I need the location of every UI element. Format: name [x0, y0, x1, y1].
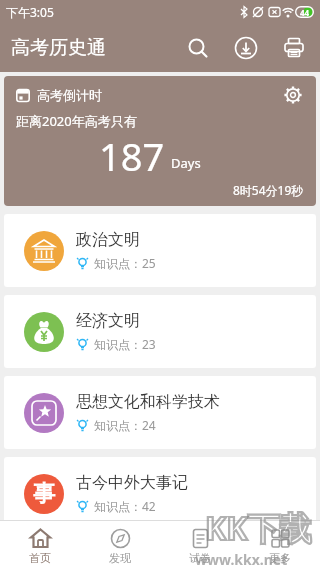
staticText: 事 [33, 480, 55, 508]
staticText: 发现 [109, 551, 131, 565]
button[interactable]: 政治文明 [4, 214, 316, 287]
button[interactable]: 首页 [0, 521, 80, 569]
staticText: 高考倒计时 [37, 87, 102, 103]
staticText: 8时54分19秒 [233, 182, 304, 198]
staticText: 知识点：42 [94, 498, 156, 514]
staticText: 距离2020年高考只有 [16, 112, 137, 130]
staticText: 政治文明 [76, 230, 140, 250]
staticText: 知识点：24 [94, 417, 156, 433]
staticText: 187 [99, 130, 165, 182]
staticText: 思想文化和科学技术 [76, 392, 220, 412]
button[interactable] [222, 24, 270, 72]
button[interactable]: 试卷 [160, 521, 240, 569]
button[interactable]: 经济文明 [4, 295, 316, 368]
button[interactable]: 思想文化和科学技术 [4, 376, 316, 449]
staticText: 经济文明 [76, 311, 140, 331]
button[interactable] [174, 24, 222, 72]
staticText: www.kkx.net [195, 550, 288, 569]
button[interactable]: 发现 [80, 521, 160, 569]
button[interactable] [282, 84, 304, 106]
staticText: 知识点：23 [94, 336, 156, 352]
button[interactable] [270, 24, 318, 72]
button[interactable]: 高考倒计时 [4, 76, 316, 206]
staticText: 古今中外大事记 [76, 473, 188, 493]
staticText: 知识点：25 [94, 255, 156, 271]
staticText: 下午3:05 [6, 4, 54, 20]
staticText: 高考历史通 [11, 36, 106, 60]
staticText: KK下载 [205, 506, 312, 550]
button[interactable]: 事 [4, 457, 316, 530]
staticText: 44 [300, 7, 310, 18]
button[interactable]: 更多 [240, 521, 320, 569]
staticText: 更多 [269, 551, 291, 565]
staticText: Days [171, 154, 201, 172]
staticText: 试卷 [189, 551, 211, 565]
staticText: 首页 [29, 551, 51, 565]
